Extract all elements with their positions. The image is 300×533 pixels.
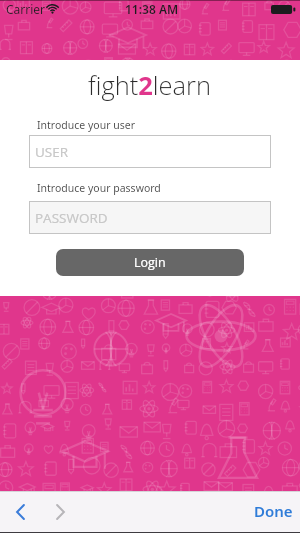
staticText: fight2learn xyxy=(88,68,212,103)
staticText: Introduce your user xyxy=(37,118,135,132)
staticText: Done xyxy=(254,501,293,521)
button[interactable]: Previous field xyxy=(5,493,35,531)
staticText: PASSWORD xyxy=(35,209,108,227)
button[interactable]: Next field xyxy=(45,493,75,531)
staticText: Introduce your password xyxy=(37,181,161,195)
button[interactable]: USER xyxy=(30,136,270,167)
staticText: Carrier xyxy=(6,1,46,17)
button[interactable]: Done xyxy=(254,501,293,521)
staticText: USER xyxy=(35,143,69,161)
staticText: 11:38 AM xyxy=(125,1,179,17)
staticText: Login xyxy=(134,254,166,271)
button[interactable]: Login xyxy=(56,249,244,276)
button[interactable]: PASSWORD xyxy=(30,202,270,233)
